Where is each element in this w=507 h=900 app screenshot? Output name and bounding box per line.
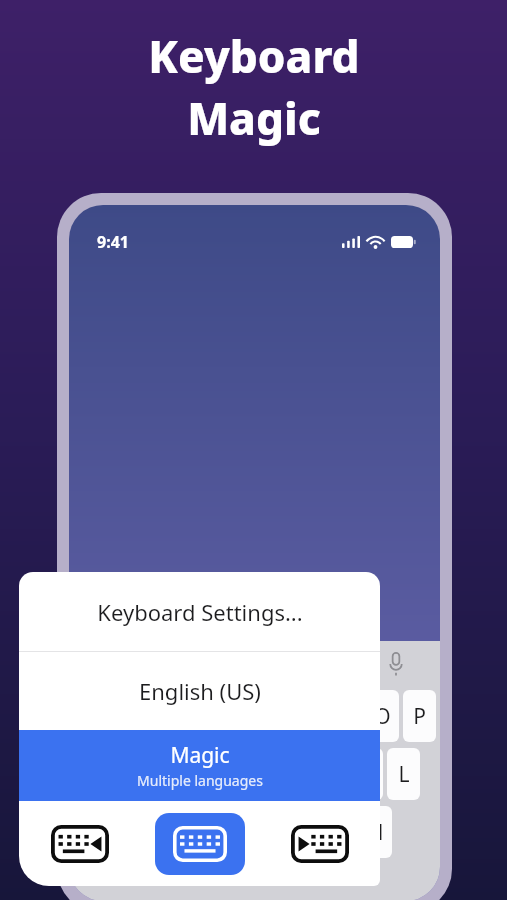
button[interactable]: Previous keyboard: [19, 801, 140, 886]
button[interactable]: D: [165, 748, 198, 800]
staticText: I: [342, 702, 350, 731]
staticText: B: [287, 818, 301, 847]
button[interactable]: Voice input: [382, 650, 410, 678]
staticText: M: [364, 818, 384, 847]
button[interactable]: E: [145, 690, 177, 742]
staticText: Q: [81, 702, 98, 731]
button[interactable]: F: [202, 748, 235, 800]
button[interactable]: Keyboard: [155, 813, 245, 875]
staticText: Multiple languages: [137, 771, 263, 790]
button[interactable]: C: [196, 806, 232, 858]
staticText: U: [301, 702, 317, 731]
staticText: English (US): [139, 676, 261, 706]
button[interactable]: Q: [73, 690, 105, 742]
staticText: F: [213, 760, 224, 789]
button[interactable]: Next keyboard: [260, 801, 380, 886]
staticText: O: [374, 702, 391, 731]
staticText: E: [155, 702, 167, 731]
staticText: Keyboard Settings...: [97, 597, 303, 627]
button[interactable]: N: [316, 806, 352, 858]
staticText: Magic: [187, 88, 321, 148]
button[interactable]: P: [403, 690, 436, 742]
button[interactable]: I: [329, 690, 362, 742]
button[interactable]: G: [239, 748, 272, 800]
staticText: R: [191, 702, 205, 731]
staticText: Y: [266, 702, 278, 731]
button[interactable]: L: [387, 748, 420, 800]
staticText: L: [398, 760, 410, 789]
button[interactable]: W: [109, 690, 141, 742]
button[interactable]: English (US): [19, 652, 380, 730]
staticText: T: [229, 702, 241, 731]
staticText: G: [248, 760, 264, 789]
button[interactable]: U: [292, 690, 325, 742]
button[interactable]: T: [218, 690, 251, 742]
staticText: W: [115, 702, 135, 731]
staticText: X: [168, 818, 181, 847]
button[interactable]: Y: [255, 690, 288, 742]
staticText: D: [174, 760, 190, 789]
staticText: N: [326, 818, 342, 847]
button[interactable]: O: [366, 690, 399, 742]
button[interactable]: S: [127, 748, 161, 800]
staticText: C: [207, 818, 221, 847]
button[interactable]: X: [156, 806, 192, 858]
button[interactable]: M: [356, 806, 392, 858]
staticText: Keyboard: [148, 26, 360, 86]
button[interactable]: B: [276, 806, 312, 858]
staticText: S: [138, 760, 150, 789]
button[interactable]: K: [350, 748, 383, 800]
button[interactable]: V: [236, 806, 272, 858]
staticText: P: [413, 702, 426, 731]
button[interactable]: R: [181, 690, 214, 742]
button[interactable]: Magic: [19, 730, 380, 801]
staticText: Magic: [170, 741, 230, 770]
staticText: 9:41: [97, 231, 129, 253]
button[interactable]: Keyboard Settings...: [19, 572, 380, 651]
